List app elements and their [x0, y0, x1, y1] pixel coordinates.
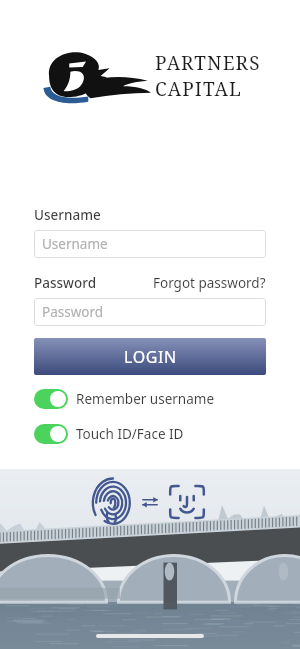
- staticText: CAPITAL: [155, 76, 242, 102]
- staticText: Forgot password?: [153, 274, 266, 292]
- staticText: PARTNERS: [155, 50, 261, 76]
- staticText: LOGIN: [124, 346, 177, 368]
- staticText: Username: [34, 206, 101, 224]
- button[interactable]: Touch ID/Face ID: [34, 424, 266, 444]
- button[interactable]: Password: [34, 298, 266, 326]
- staticText: Touch ID/Face ID: [76, 425, 184, 443]
- button[interactable]: LOGIN: [34, 338, 266, 375]
- staticText: Password: [42, 303, 104, 321]
- button[interactable]: Remember username: [34, 389, 266, 409]
- button[interactable]: Forgot password?: [153, 274, 266, 292]
- button[interactable]: Username: [34, 230, 266, 258]
- other: Switch authentication method: [141, 495, 159, 509]
- staticText: Remember username: [76, 390, 215, 408]
- staticText: Username: [42, 235, 108, 253]
- staticText: Password: [34, 274, 97, 292]
- other: Touch ID fingerprint: [92, 481, 134, 523]
- other: Face ID: [166, 481, 208, 523]
